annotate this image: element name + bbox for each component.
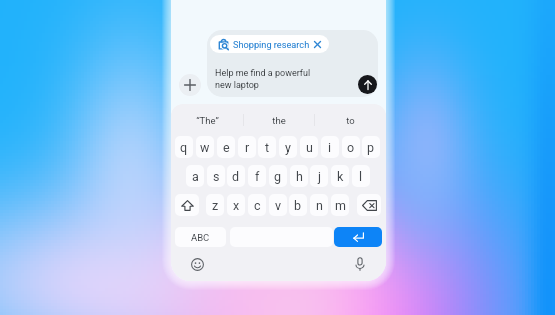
staticText: t [265,140,270,155]
staticText: y [285,140,291,155]
button[interactable]: Emoji [188,255,206,273]
button[interactable]: z [206,194,224,216]
button[interactable]: ABC [175,227,226,247]
button[interactable]: w [196,136,214,158]
staticText: c [254,198,261,213]
button[interactable]: t [258,136,276,158]
staticText: j [318,169,321,184]
button[interactable]: q [175,136,193,158]
button[interactable]: y [279,136,297,158]
button[interactable]: Send [358,75,377,94]
button[interactable]: j [310,165,328,187]
button[interactable]: a [186,165,204,187]
button[interactable]: k [331,165,349,187]
staticText: v [275,198,282,213]
staticText: f [255,169,260,184]
button[interactable]: Add attachment [179,74,201,96]
button[interactable]: m [331,194,349,216]
button[interactable]: g [269,165,287,187]
staticText: i [328,140,332,155]
button[interactable]: Voice input [351,255,369,273]
staticText: z [212,198,219,213]
button[interactable]: Enter [334,227,382,247]
staticText: new laptop [215,80,259,91]
button[interactable]: l [352,165,370,187]
button[interactable]: h [290,165,308,187]
staticText: m [335,198,346,213]
button[interactable]: to [314,107,386,134]
button[interactable]: n [310,194,328,216]
button[interactable]: p [362,136,380,158]
button[interactable]: f [248,165,266,187]
button[interactable]: u [300,136,318,158]
button[interactable]: the [243,107,315,134]
staticText: s [213,169,220,184]
staticText: k [337,169,344,184]
staticText: g [274,169,282,184]
staticText: x [233,198,240,213]
button[interactable]: v [269,194,287,216]
staticText: to [346,115,355,126]
staticText: l [359,169,363,184]
staticText: b [294,198,302,213]
staticText: ABC [191,232,210,243]
staticText: n [316,198,323,213]
staticText: q [180,140,188,155]
button[interactable]: r [238,136,256,158]
button[interactable]: Shopping research [210,35,329,53]
staticText: Shopping research [233,39,310,50]
staticText: d [232,169,240,184]
button[interactable] [357,194,381,216]
staticText: w [200,140,210,155]
staticText: o [347,140,355,155]
staticText: u [306,140,313,155]
staticText: a [192,169,199,184]
staticText: “The” [196,115,219,126]
button[interactable]: s [207,165,225,187]
staticText: r [245,140,250,155]
button[interactable]: b [289,194,307,216]
staticText: Help me find a powerful [215,68,311,79]
button[interactable]: o [342,136,360,158]
staticText: p [367,140,375,155]
staticText: h [296,169,303,184]
button[interactable]: i [321,136,339,158]
staticText: the [272,115,286,126]
button[interactable]: d [227,165,245,187]
staticText: e [223,140,230,155]
button[interactable]: “The” [171,107,243,134]
button[interactable] [175,194,199,216]
button[interactable]: c [248,194,266,216]
button[interactable]: e [217,136,235,158]
button[interactable]: x [227,194,245,216]
button[interactable] [207,30,378,97]
